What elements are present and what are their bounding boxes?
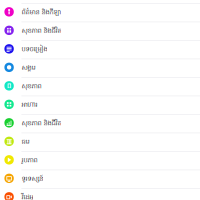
button[interactable]: ធម (0, 132, 200, 151)
staticText: ធម (21, 137, 29, 147)
button[interactable]: រូបភាព (0, 151, 200, 169)
button[interactable]: ទូរទស្សន៍ (0, 169, 200, 188)
staticText: ព័ត៌មាន និងកីឡា (21, 8, 61, 17)
staticText: រូបភាព (21, 156, 37, 165)
staticText: វីដេអូ (21, 193, 33, 200)
staticText: បទចម្រៀង (21, 45, 47, 54)
button[interactable]: អាហារ (0, 95, 200, 114)
staticText: សុខភាព និងជីវិត (21, 119, 61, 128)
button[interactable]: សុខភាព និងជីវិត (0, 114, 200, 132)
staticText: ទូរទស្សន៍ (21, 174, 43, 184)
staticText: សុខភាព (21, 82, 41, 91)
button[interactable]: សុខភាព និងជីវិត (0, 21, 200, 40)
staticText: សង្គម (21, 63, 35, 73)
button[interactable]: បទចម្រៀង (0, 40, 200, 58)
button[interactable]: សង្គម (0, 58, 200, 77)
button[interactable]: ព័ត៌មាន និងកីឡា (0, 3, 200, 21)
staticText: អាហារ (21, 100, 37, 110)
button[interactable]: វីដេអូ (0, 188, 200, 200)
staticText: សុខភាព និងជីវិត (21, 26, 61, 36)
button[interactable]: សុខភាព (0, 77, 200, 95)
